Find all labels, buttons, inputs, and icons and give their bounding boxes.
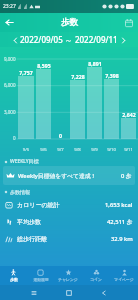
staticText: 7,757 — [19, 69, 33, 76]
button[interactable] — [70, 80, 85, 139]
staticText: 7,228 — [71, 73, 85, 80]
staticText: Weekly目標値をすべて達成！ — [18, 172, 97, 180]
staticText: 42,511 歩 — [107, 218, 133, 226]
button[interactable]: Back — [0, 13, 19, 32]
staticText: 6,000 — [4, 82, 16, 88]
button[interactable]: 運動履歴 — [27, 266, 54, 285]
staticText: 2022/09/05 ～ 2022/09/11 — [20, 34, 118, 45]
staticText: 総歩行距離 — [17, 235, 47, 243]
staticText: 9/11 — [121, 147, 136, 153]
staticText: 歩数 — [10, 277, 18, 282]
staticText: 1,653 kcal — [105, 201, 133, 209]
staticText: 3,000 — [4, 109, 16, 115]
staticText: 0 — [59, 132, 62, 139]
staticText: 2,642 — [122, 111, 136, 118]
button[interactable] — [18, 76, 34, 139]
staticText: マイページ — [114, 277, 134, 282]
button[interactable]: チャレンジ — [54, 266, 82, 285]
button[interactable]: Calendar — [119, 13, 138, 32]
staticText: 9/5 — [18, 147, 34, 153]
staticText: 9/10 — [104, 147, 119, 153]
button[interactable]: 平均歩数 — [0, 213, 138, 230]
staticText: 歩数 — [61, 17, 78, 28]
staticText: 7,398 — [105, 72, 119, 79]
staticText: 9/8 — [70, 147, 85, 153]
staticText: 平均歩数 — [17, 218, 41, 226]
staticText: 23:27 — [3, 3, 16, 10]
button[interactable]: Home — [51, 290, 86, 296]
staticText: チャレンジ — [58, 277, 78, 282]
button[interactable]: コイン — [82, 266, 110, 285]
button[interactable]: 歩数 — [0, 266, 27, 285]
staticText: 9,000 — [4, 56, 16, 62]
staticText: 8,891 — [88, 60, 102, 67]
staticText: 0 歩 — [121, 172, 132, 180]
button[interactable] — [104, 79, 119, 139]
button[interactable]: Weekly目標値をすべて達成！ — [3, 166, 135, 185]
button[interactable]: Previous week — [10, 35, 20, 45]
staticText: 歩数情報 — [10, 189, 30, 195]
button[interactable] — [36, 69, 51, 139]
staticText: 9/6 — [36, 147, 51, 153]
staticText: WEEKLY目標 — [10, 158, 39, 165]
staticText: 0 — [13, 135, 16, 141]
button[interactable]: 総歩行距離 — [0, 230, 138, 247]
button[interactable]: Recents — [16, 290, 51, 296]
button[interactable]: Next week — [118, 35, 128, 45]
staticText: 32.9 km — [111, 235, 133, 243]
button[interactable] — [87, 67, 102, 139]
button[interactable]: マイページ — [110, 266, 138, 285]
staticText: 運動履歴 — [33, 277, 49, 282]
staticText: カロリーの統計 — [17, 201, 60, 209]
staticText: コイン — [90, 277, 102, 282]
button[interactable]: カロリーの統計 — [0, 196, 138, 213]
staticText: 9/9 — [87, 147, 102, 153]
staticText: 8,595 — [37, 62, 51, 69]
button[interactable]: Back — [86, 290, 121, 296]
staticText: 9/7 — [53, 147, 68, 153]
